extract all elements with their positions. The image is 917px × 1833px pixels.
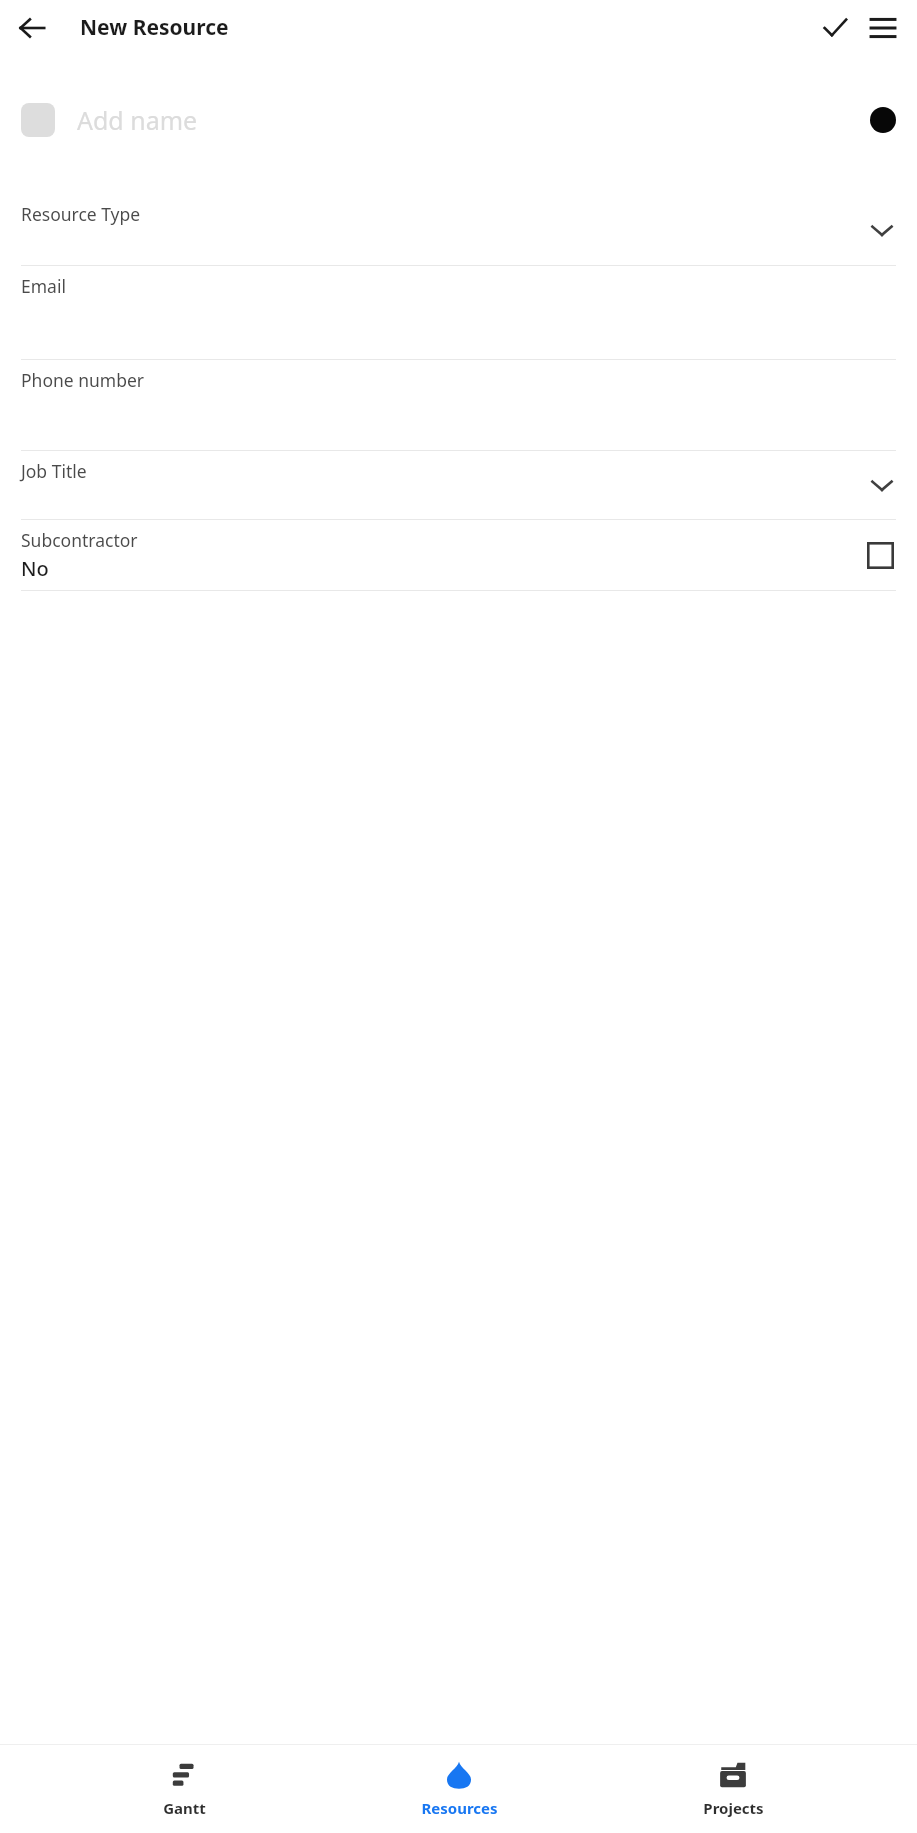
staticText: Projects [703,1798,764,1818]
button[interactable]: Subcontractor checkbox [867,542,894,569]
staticText: Resource Type [21,202,141,226]
button[interactable]: Email [0,266,917,359]
button[interactable]: Phone number [0,360,917,450]
button[interactable]: Subcontractor [0,520,917,590]
staticText: Email [21,274,66,298]
button[interactable]: Add name [0,55,917,185]
staticText: Phone number [21,368,145,392]
button[interactable]: Resource Type [0,194,917,265]
button[interactable]: Back [8,4,56,52]
button[interactable]: Save [811,4,859,52]
staticText: Resources [421,1798,498,1818]
staticText: No [21,555,49,582]
button[interactable]: Menu [859,4,907,52]
staticText: Job Title [21,459,87,483]
button[interactable]: Colour [870,107,896,133]
staticText: New Resource [80,13,229,42]
staticText: Subcontractor [21,528,138,552]
button[interactable]: Projects [643,1745,823,1833]
button[interactable]: Job Title [0,451,917,519]
staticText: Add name [77,103,198,137]
staticText: Gantt [163,1798,206,1818]
button[interactable]: Resources [369,1745,549,1833]
button[interactable]: Gantt [94,1745,274,1833]
